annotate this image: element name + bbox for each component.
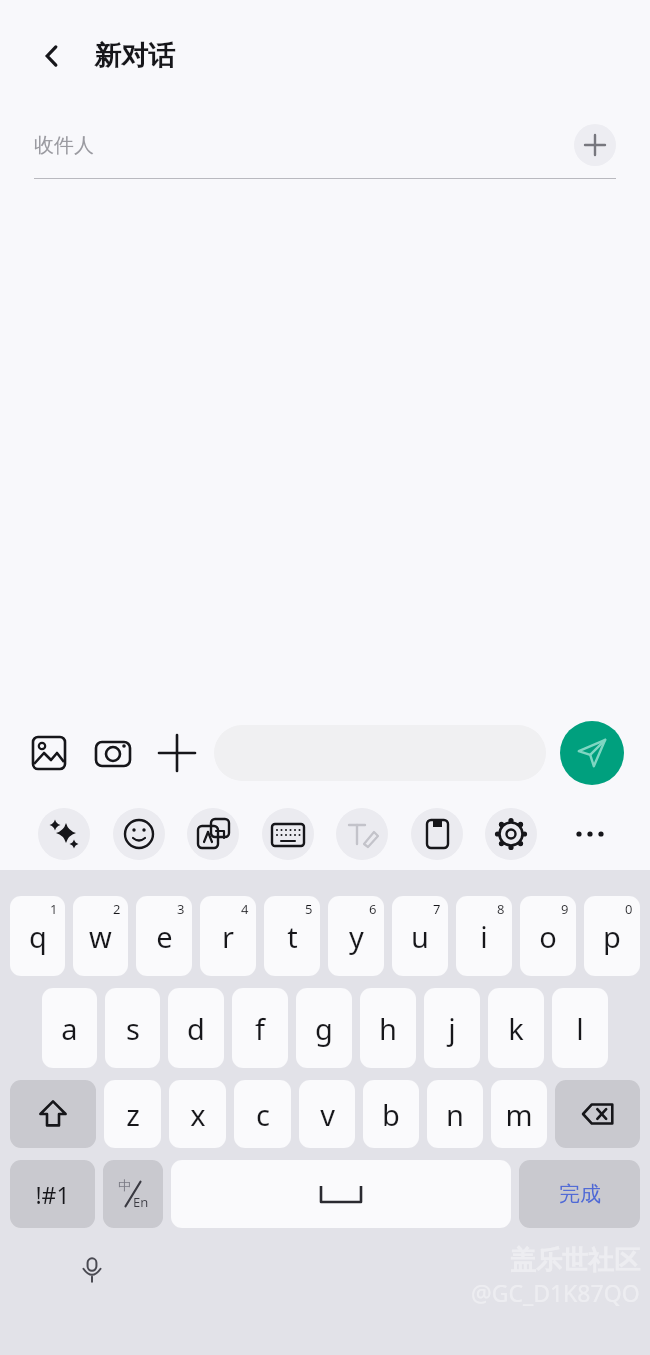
button[interactable]: Send bbox=[560, 721, 624, 785]
staticText: i bbox=[480, 917, 488, 956]
button[interactable]: u bbox=[392, 896, 448, 976]
staticText: v bbox=[320, 1095, 335, 1134]
staticText: l bbox=[576, 1009, 584, 1048]
button[interactable]: c bbox=[234, 1080, 291, 1148]
button[interactable]: Add recipient bbox=[574, 124, 616, 166]
staticText: a bbox=[61, 1009, 78, 1048]
staticText: f bbox=[255, 1009, 265, 1048]
button[interactable]: Emoji bbox=[113, 808, 165, 860]
staticText: j bbox=[448, 1009, 456, 1048]
button[interactable]: a bbox=[42, 988, 97, 1068]
button[interactable]: back bbox=[555, 1080, 640, 1148]
button[interactable]: Translate bbox=[187, 808, 239, 860]
button[interactable]: v bbox=[299, 1080, 355, 1148]
staticText: b bbox=[382, 1095, 400, 1134]
staticText: 6 bbox=[369, 900, 377, 918]
staticText: 收件人 bbox=[34, 133, 574, 158]
staticText: 中 bbox=[118, 1177, 131, 1193]
staticText: n bbox=[446, 1095, 464, 1134]
button[interactable]: Gallery bbox=[26, 730, 72, 776]
staticText: e bbox=[156, 917, 173, 956]
button[interactable]: k bbox=[488, 988, 544, 1068]
button[interactable]: Back bbox=[30, 34, 74, 78]
button[interactable]: More bbox=[560, 808, 612, 860]
staticText: t bbox=[287, 917, 298, 956]
button[interactable]: s bbox=[105, 988, 160, 1068]
button[interactable]: Keyboard layout bbox=[262, 808, 314, 860]
staticText: m bbox=[505, 1095, 533, 1134]
staticText: c bbox=[256, 1095, 270, 1134]
button[interactable]: f bbox=[232, 988, 288, 1068]
button[interactable]: l bbox=[552, 988, 608, 1068]
button[interactable]: Handwriting bbox=[336, 808, 388, 860]
staticText: 0 bbox=[625, 900, 633, 918]
staticText: 9 bbox=[561, 900, 569, 918]
button[interactable]: More options bbox=[154, 730, 200, 776]
button[interactable]: b bbox=[363, 1080, 419, 1148]
staticText: k bbox=[508, 1009, 524, 1048]
button[interactable]: !#1 bbox=[10, 1160, 95, 1228]
staticText: 新对话 bbox=[94, 39, 175, 73]
staticText: o bbox=[539, 917, 557, 956]
staticText: p bbox=[603, 917, 621, 956]
button[interactable]: i bbox=[456, 896, 512, 976]
staticText: 盖乐世社区 bbox=[510, 1244, 640, 1277]
staticText: q bbox=[29, 917, 47, 956]
button[interactable]: p bbox=[584, 896, 640, 976]
staticText: h bbox=[379, 1009, 397, 1048]
button[interactable]: w bbox=[73, 896, 128, 976]
staticText: !#1 bbox=[35, 1179, 70, 1210]
staticText: g bbox=[315, 1009, 333, 1048]
button[interactable]: q bbox=[10, 896, 65, 976]
staticText: 7 bbox=[433, 900, 441, 918]
button[interactable]: shift bbox=[10, 1080, 96, 1148]
button[interactable]: Clipboard bbox=[411, 808, 463, 860]
staticText: d bbox=[187, 1009, 205, 1048]
button[interactable]: Settings bbox=[485, 808, 537, 860]
button[interactable]: t bbox=[264, 896, 320, 976]
staticText: w bbox=[89, 917, 112, 956]
button[interactable]: j bbox=[424, 988, 480, 1068]
button[interactable]: g bbox=[296, 988, 352, 1068]
button[interactable]: Voice input bbox=[72, 1250, 112, 1290]
button[interactable]: y bbox=[328, 896, 384, 976]
button[interactable]: x bbox=[169, 1080, 226, 1148]
button[interactable]: n bbox=[427, 1080, 483, 1148]
staticText: x bbox=[190, 1095, 206, 1134]
staticText: r bbox=[222, 917, 234, 956]
button[interactable]: z bbox=[104, 1080, 161, 1148]
staticText: y bbox=[349, 917, 364, 956]
button[interactable]: 完成 bbox=[519, 1160, 640, 1228]
staticText: 5 bbox=[305, 900, 313, 918]
staticText: 2 bbox=[113, 900, 121, 918]
button[interactable]: e bbox=[136, 896, 192, 976]
button[interactable]: Camera bbox=[90, 730, 136, 776]
button[interactable]: m bbox=[491, 1080, 547, 1148]
staticText: @GC_D1K87QO bbox=[471, 1277, 640, 1308]
staticText: s bbox=[126, 1009, 140, 1048]
button[interactable]: o bbox=[520, 896, 576, 976]
button[interactable]: space bbox=[171, 1160, 511, 1228]
staticText: 3 bbox=[177, 900, 185, 918]
button[interactable]: d bbox=[168, 988, 224, 1068]
staticText: 完成 bbox=[559, 1181, 601, 1207]
button[interactable]: h bbox=[360, 988, 416, 1068]
staticText: z bbox=[126, 1095, 140, 1134]
button[interactable]: lang bbox=[103, 1160, 163, 1228]
staticText: En bbox=[133, 1193, 149, 1211]
staticText: 8 bbox=[497, 900, 505, 918]
staticText: u bbox=[411, 917, 429, 956]
staticText: 1 bbox=[50, 900, 58, 918]
button[interactable]: AI suggestions bbox=[38, 808, 90, 860]
button[interactable]: r bbox=[200, 896, 256, 976]
staticText: 4 bbox=[241, 900, 249, 918]
